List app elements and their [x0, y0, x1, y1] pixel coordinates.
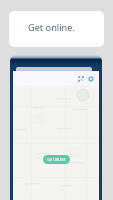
button[interactable]: Scan QR code: [76, 74, 85, 83]
button[interactable]: Settings: [86, 74, 95, 83]
staticText: Get online.: [28, 21, 75, 34]
button[interactable]: GO ONLINE: [43, 155, 70, 164]
staticText: GO ONLINE: [47, 158, 66, 162]
button[interactable]: Get online.: [9, 11, 104, 47]
